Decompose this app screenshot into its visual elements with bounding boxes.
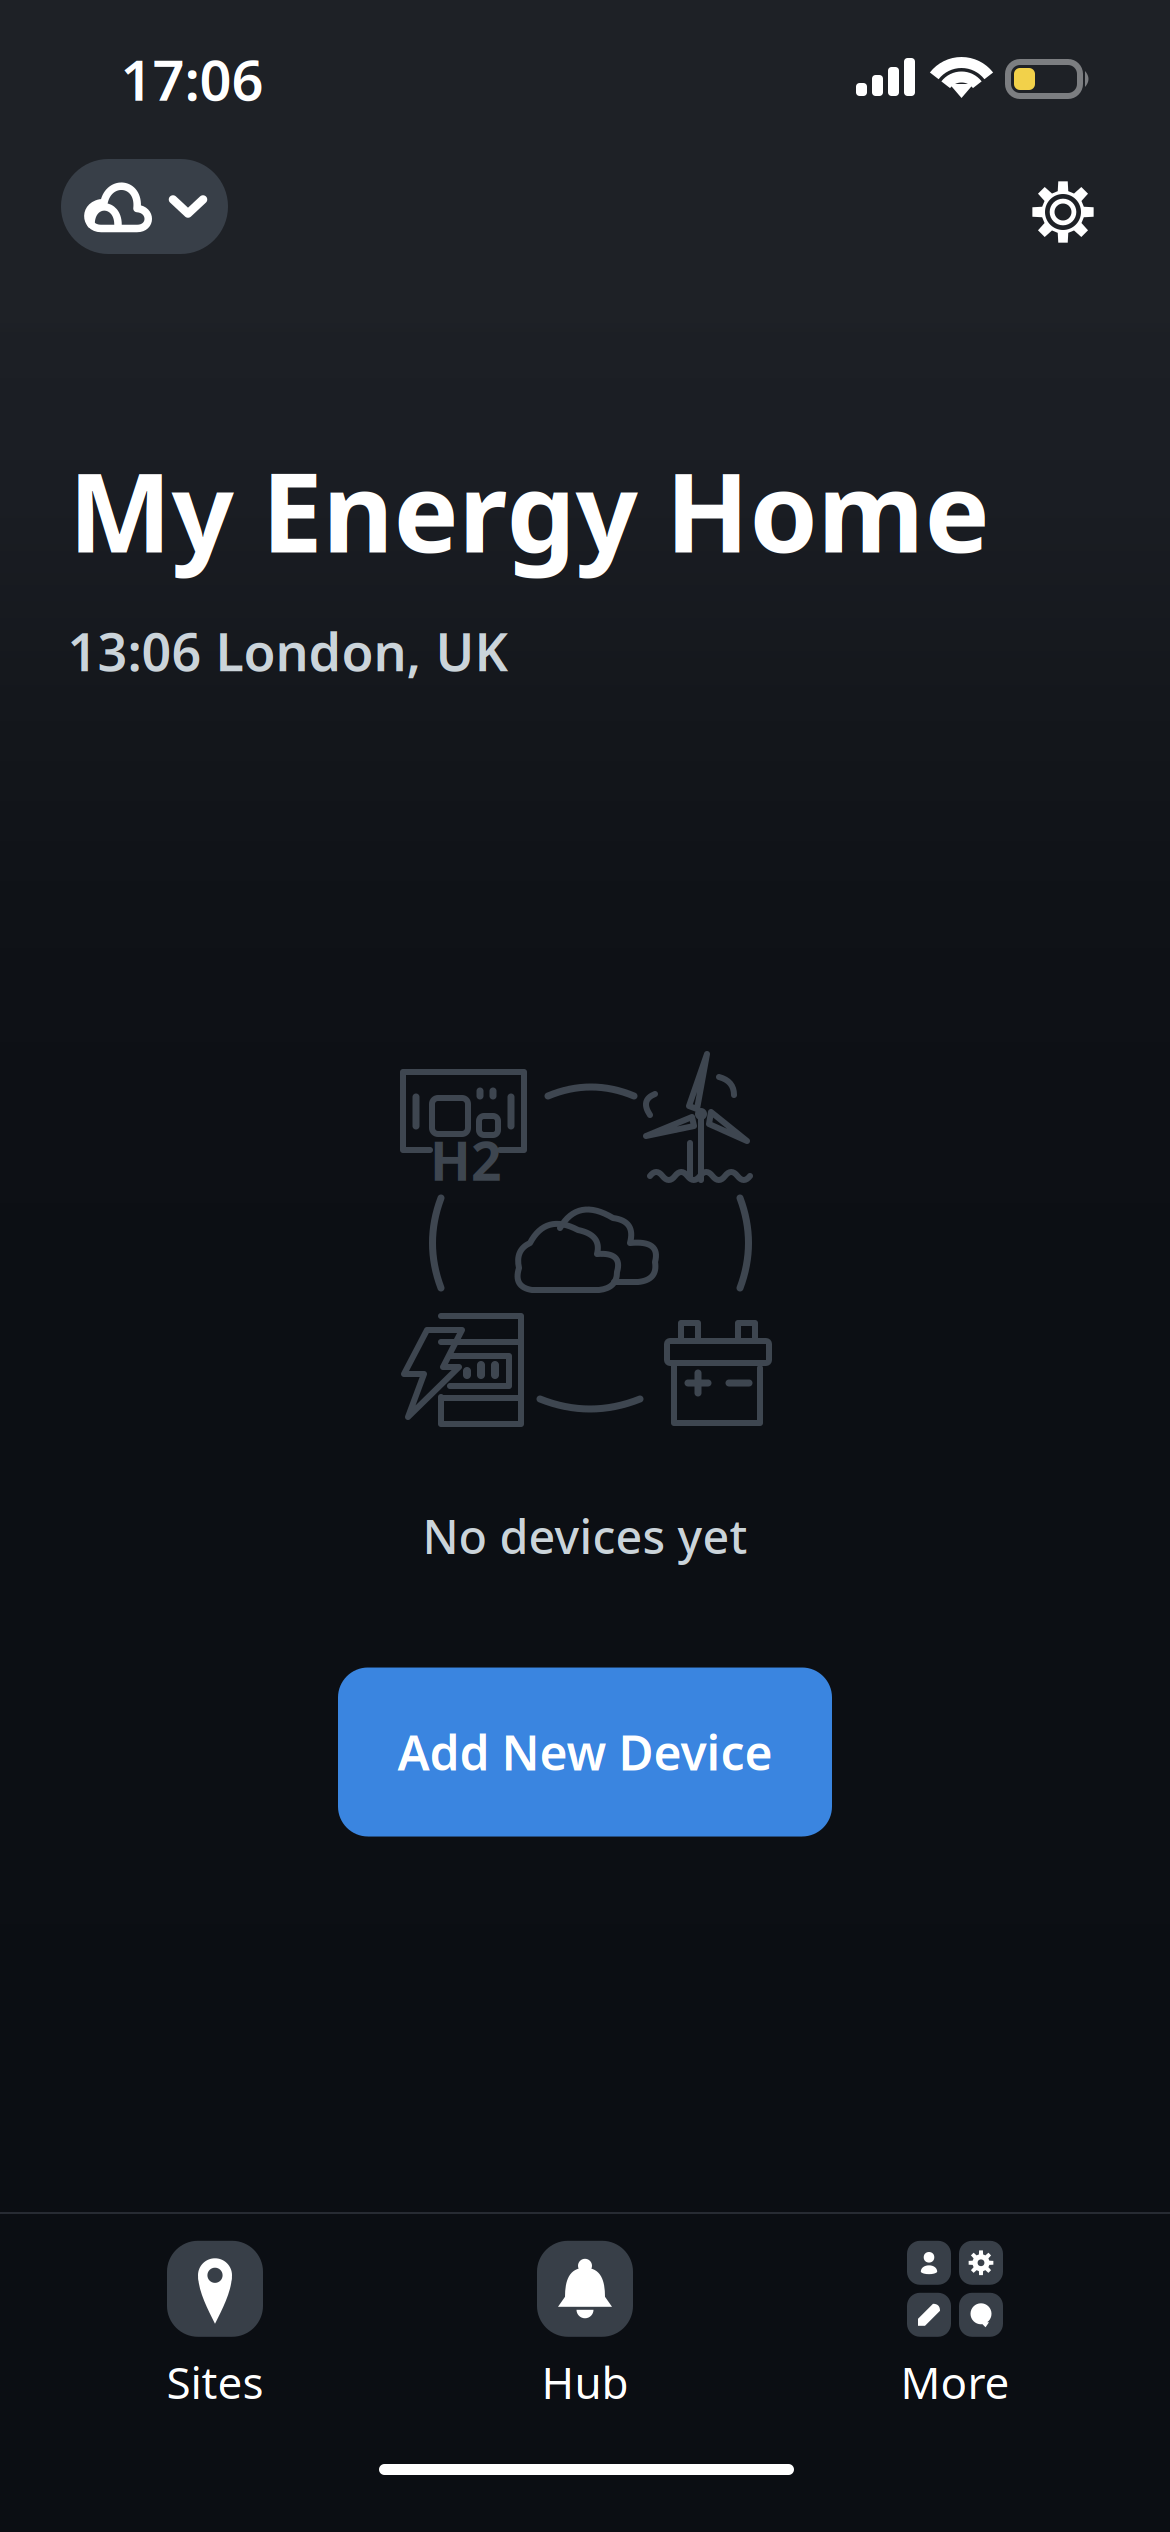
staticText: More <box>900 2353 1009 2411</box>
staticText: Add New Device <box>397 1720 772 1784</box>
staticText: H2 <box>430 1125 502 1195</box>
staticText: 17:06 <box>120 42 263 116</box>
button[interactable]: Hub <box>455 2241 715 2411</box>
button[interactable]: Settings <box>1013 162 1113 262</box>
button[interactable]: Add New Device <box>338 1667 832 1836</box>
staticText: My Energy Home <box>68 437 989 583</box>
staticText: Hub <box>541 2353 628 2411</box>
staticText: Sites <box>166 2353 263 2411</box>
button[interactable]: Select site <box>61 159 228 254</box>
staticText: 13:06 London, UK <box>67 616 508 686</box>
staticText: No devices yet <box>422 1505 747 1567</box>
button[interactable]: More <box>825 2241 1085 2411</box>
button[interactable]: Sites <box>85 2241 345 2411</box>
